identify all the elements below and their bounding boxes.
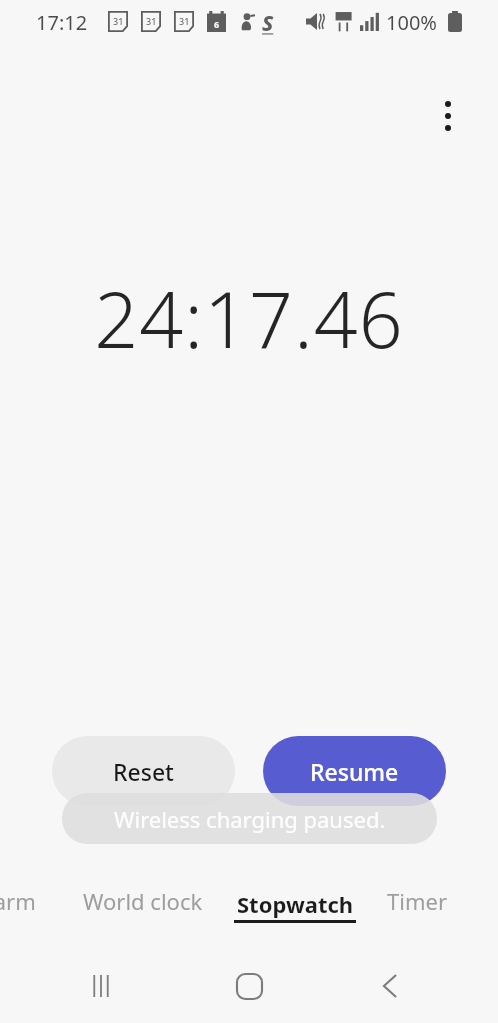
button[interactable]: Resume <box>263 736 446 806</box>
button[interactable]: Home <box>221 958 277 1014</box>
staticText: S <box>262 9 274 38</box>
button[interactable]: Recent apps <box>73 958 129 1014</box>
staticText: Timer <box>387 886 447 916</box>
staticText: 31 <box>179 15 190 27</box>
button[interactable]: Timer <box>372 878 462 924</box>
staticText: World clock <box>83 886 203 916</box>
staticText: Wireless charging paused. <box>114 804 386 834</box>
staticText: 17:12 <box>36 9 88 36</box>
staticText: 6 <box>214 18 220 30</box>
staticText: Stopwatch <box>237 889 354 919</box>
staticText: Alarm <box>0 886 36 916</box>
button[interactable]: Stopwatch <box>226 878 364 934</box>
staticText: Resume <box>310 756 399 787</box>
staticText: Reset <box>113 756 174 787</box>
staticText: 24:17.46 <box>94 266 404 366</box>
button[interactable]: Reset <box>52 736 235 806</box>
button[interactable]: More options <box>420 88 476 144</box>
staticText: 100% <box>386 9 437 36</box>
button[interactable]: Alarm <box>0 878 36 924</box>
staticText: 31 <box>146 15 157 27</box>
staticText: 31 <box>113 15 124 27</box>
button[interactable]: Back <box>362 958 418 1014</box>
button[interactable]: World clock <box>60 878 225 924</box>
